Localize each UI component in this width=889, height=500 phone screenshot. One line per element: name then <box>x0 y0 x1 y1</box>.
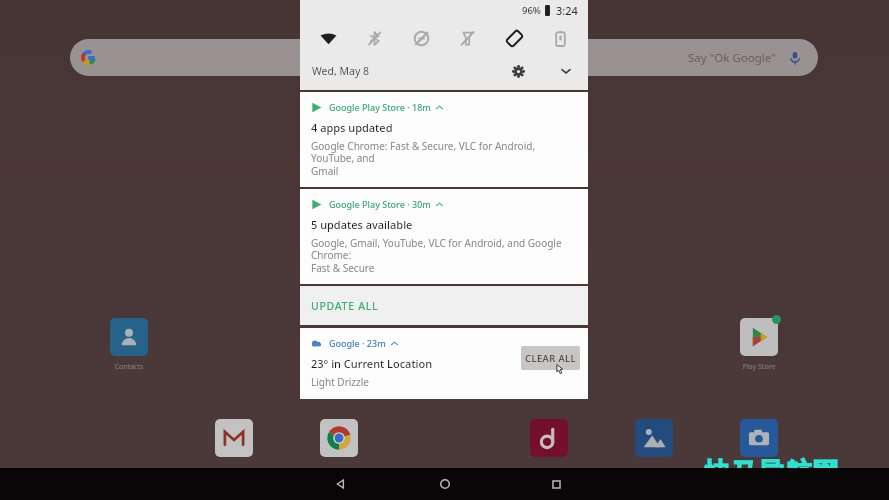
button[interactable]: Bluetooth off <box>361 25 387 51</box>
button[interactable]: Auto-rotate <box>501 25 527 51</box>
staticText: Google, Gmail, YouTube, VLC for Android,… <box>311 236 579 275</box>
button[interactable]: Settings <box>508 61 528 81</box>
button[interactable]: Camera <box>740 419 778 457</box>
staticText: Google Play Store · 30m <box>329 198 431 210</box>
staticText: CLEAR ALL <box>525 352 577 365</box>
button[interactable]: Photos <box>635 419 673 457</box>
button[interactable]: Play Store <box>729 318 789 372</box>
staticText: 23° in Current Location <box>311 356 433 371</box>
button[interactable]: Google Play Store · 18m <box>300 92 588 187</box>
button[interactable]: Contacts <box>99 318 159 372</box>
staticText: UPDATE ALL <box>311 299 379 313</box>
staticText: Play Store <box>729 362 789 372</box>
button[interactable]: CLEAR ALL <box>521 346 580 370</box>
button[interactable]: Recents <box>541 469 571 499</box>
button[interactable]: Collapse <box>556 61 576 81</box>
staticText: Say "Ok Google" <box>688 50 776 66</box>
staticText: Light Drizzle <box>311 375 369 389</box>
staticText: 96% <box>522 4 541 17</box>
staticText: 5 updates available <box>311 217 413 232</box>
button[interactable]: UPDATE ALL <box>300 286 588 325</box>
button[interactable]: Battery saver off <box>547 25 573 51</box>
staticText: 3:24 <box>556 3 578 18</box>
staticText: Google Chrome: Fast & Secure, VLC for An… <box>311 139 579 178</box>
staticText: 快马导航网 <box>704 456 839 490</box>
button[interactable]: Chrome <box>320 419 358 457</box>
staticText: Google · 23m <box>329 337 386 349</box>
button[interactable]: Wi-Fi <box>315 25 341 51</box>
button[interactable]: Home <box>430 469 460 499</box>
button[interactable]: Flashlight off <box>454 25 480 51</box>
button[interactable]: Gmail <box>215 419 253 457</box>
button[interactable]: Google · 23m <box>300 328 588 399</box>
staticText: Wed, May 8 <box>312 64 369 78</box>
staticText: Google Play Store · 18m <box>329 101 431 113</box>
staticText: 4 apps updated <box>311 120 393 135</box>
button[interactable]: Do not disturb off <box>408 25 434 51</box>
button[interactable]: Google Play Store · 30m <box>300 189 588 284</box>
button[interactable]: Back <box>325 469 355 499</box>
staticText: Contacts <box>99 362 159 372</box>
button[interactable]: Music <box>530 419 568 457</box>
button[interactable]: Google search <box>70 39 818 76</box>
